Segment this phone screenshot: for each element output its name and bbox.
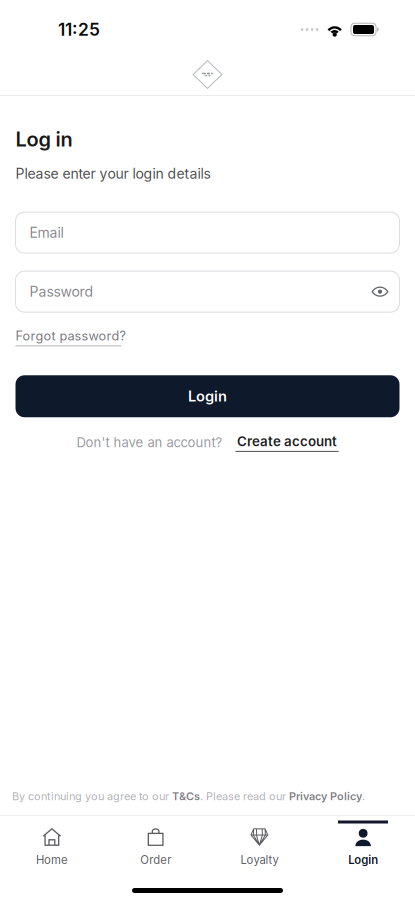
button[interactable]: Loyalty <box>207 815 311 874</box>
staticText: Login <box>348 853 378 867</box>
button[interactable]: Show password <box>371 285 388 298</box>
staticText: Loyalty <box>240 853 278 867</box>
button[interactable]: Home <box>0 815 104 874</box>
staticText: Email <box>29 224 63 241</box>
button[interactable]: Order <box>104 815 208 874</box>
staticText: Create account <box>237 433 337 449</box>
staticText: Home <box>36 853 68 867</box>
staticText: Log in <box>15 127 72 151</box>
staticText: Order <box>140 853 171 867</box>
button[interactable]: Login <box>15 375 399 417</box>
button[interactable]: Login <box>311 815 415 874</box>
button[interactable]: Forgot password? <box>15 328 125 346</box>
staticText: 11:25 <box>58 19 100 40</box>
staticText: Don't have an account? <box>76 435 222 450</box>
staticText: Forgot password? <box>15 328 125 343</box>
staticText: . Please read our <box>200 790 289 803</box>
staticText: T&Cs <box>172 790 200 803</box>
staticText: Login <box>188 387 227 405</box>
staticText: Password <box>29 283 93 300</box>
staticText: . <box>362 790 365 803</box>
staticText: Please enter your login details <box>15 165 210 182</box>
staticText: Privacy Policy <box>289 790 362 803</box>
staticText: By continuing you agree to our <box>12 790 172 803</box>
button[interactable]: Create account <box>235 433 338 452</box>
